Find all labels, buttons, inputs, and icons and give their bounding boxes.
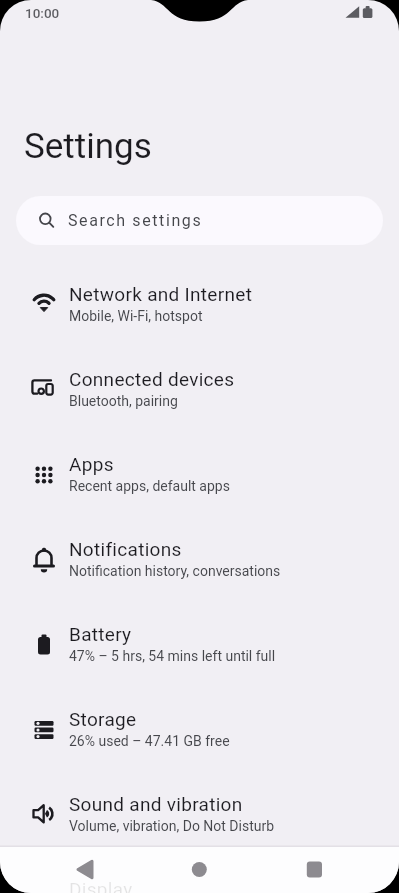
staticText: 10:00 (25, 5, 60, 21)
staticText: Apps (69, 453, 114, 475)
button[interactable]: Notifications (0, 519, 399, 604)
button[interactable]: Storage (0, 689, 399, 774)
staticText: Connected devices (69, 368, 235, 390)
staticText: Volume, vibration, Do Not Disturb (69, 818, 275, 834)
button[interactable]: Battery (0, 604, 399, 689)
button[interactable]: Apps (0, 434, 399, 519)
staticText: Sound and vibration (69, 793, 243, 815)
button[interactable]: Connected devices (0, 349, 399, 434)
staticText: 26% used – 47.41 GB free (69, 733, 230, 749)
button[interactable]: Search settings (16, 196, 383, 245)
staticText: Settings (24, 126, 152, 167)
button[interactable]: Display (0, 859, 399, 893)
staticText: Mobile, Wi-Fi, hotspot (69, 308, 203, 324)
button[interactable]: Network and Internet (0, 264, 399, 349)
staticText: Network and Internet (69, 283, 253, 305)
staticText: Bluetooth, pairing (69, 393, 178, 409)
button[interactable] (0, 847, 133, 893)
staticText: Notification history, conversations (69, 563, 281, 579)
staticText: Search settings (68, 211, 203, 230)
staticText: Display (69, 878, 133, 893)
button[interactable] (266, 847, 399, 893)
button[interactable]: Sound and vibration (0, 774, 399, 859)
button[interactable] (133, 847, 266, 893)
staticText: Recent apps, default apps (69, 478, 230, 494)
staticText: 47% – 5 hrs, 54 mins left until full (69, 648, 276, 664)
staticText: Notifications (69, 538, 182, 560)
staticText: Battery (69, 623, 132, 645)
staticText: Storage (69, 708, 137, 730)
